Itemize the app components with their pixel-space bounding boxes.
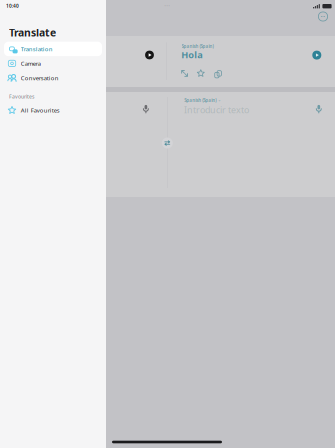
staticText: Spanish (Spain) [181, 43, 213, 49]
button[interactable]: Favourite [194, 67, 207, 79]
button[interactable]: Camera [0, 56, 106, 71]
staticText: Camera [21, 59, 41, 67]
staticText: Conversation [21, 74, 59, 82]
staticText: 10:40 [6, 3, 19, 9]
button[interactable]: Full screen [178, 67, 191, 79]
staticText: Introducir texto [184, 104, 249, 116]
button[interactable]: Conversation [0, 71, 106, 85]
button[interactable]: More [315, 8, 331, 24]
staticText: Favourites [9, 93, 34, 100]
staticText: Spanish (Spain) [184, 97, 216, 103]
staticText: Translation [21, 45, 53, 53]
button[interactable]: Dictate [312, 102, 326, 116]
button[interactable]: Swap languages [160, 135, 175, 150]
staticText: Hola [181, 48, 203, 61]
button[interactable]: Play original [140, 46, 158, 64]
button[interactable]: Copy [210, 67, 223, 79]
button[interactable]: Dictate source [139, 102, 153, 116]
button[interactable]: Translation [0, 42, 106, 56]
staticText: • • • [164, 4, 169, 8]
staticText: All Favourites [21, 106, 60, 114]
staticText: Translate [9, 25, 56, 40]
staticText: ⌄ [218, 98, 221, 102]
button[interactable]: Play translation [308, 47, 325, 64]
button[interactable]: All Favourites [0, 103, 106, 118]
